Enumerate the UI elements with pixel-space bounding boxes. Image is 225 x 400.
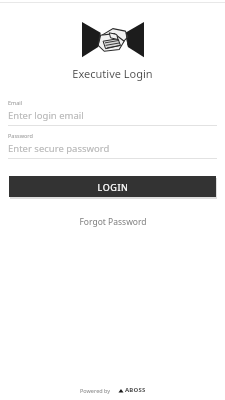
staticText: Enter secure password [8,142,110,155]
staticText: LOGIN [97,181,129,193]
staticText: Executive Login [72,66,153,81]
button[interactable]: LOGIN [9,176,216,197]
staticText: ABOSS [125,386,146,394]
button[interactable]: Password [0,132,225,159]
staticText: Enter login email [8,109,84,122]
staticText: Forgot Password [79,216,147,228]
staticText: Powered by [80,387,111,394]
button[interactable]: Email [0,99,225,126]
staticText: Password [8,132,33,139]
button[interactable]: Forgot Password [73,214,153,230]
staticText: Email [8,99,23,106]
